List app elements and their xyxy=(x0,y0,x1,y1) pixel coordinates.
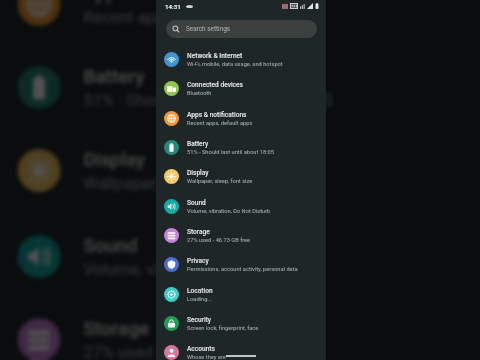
staticText: 51% - Should last until about 18:05 xyxy=(83,92,333,112)
button[interactable]: Location xyxy=(156,280,326,309)
button[interactable]: Storage xyxy=(0,298,480,360)
staticText: Whose they are xyxy=(187,354,226,360)
staticText: Wi-Fi, mobile, data usage, and hotspot xyxy=(187,61,283,68)
staticText: 51% - Should last until about 18:05 xyxy=(187,149,274,156)
button[interactable]: Battery xyxy=(0,46,480,129)
button[interactable]: Network & Internet xyxy=(156,45,326,74)
staticText: Storage xyxy=(187,228,210,236)
staticText: Wallpaper, sleep, font size xyxy=(187,178,253,185)
staticText: Connected devices xyxy=(187,81,243,89)
staticText: Network & Internet xyxy=(187,52,243,60)
staticText: Privacy xyxy=(187,257,209,265)
button[interactable]: Apps & notifications xyxy=(0,0,480,46)
button[interactable]: Storage xyxy=(156,221,326,250)
staticText: Storage xyxy=(83,318,149,341)
staticText: Display xyxy=(83,149,147,172)
button[interactable]: Battery xyxy=(156,133,326,162)
button[interactable]: Display xyxy=(156,162,326,191)
staticText: Loading... xyxy=(187,296,212,303)
staticText: Search settings xyxy=(186,25,231,33)
staticText: Battery xyxy=(83,66,147,89)
button[interactable]: Privacy xyxy=(156,250,326,279)
staticText: Wallpaper, sleep, font size xyxy=(83,175,273,195)
button[interactable]: Search settings xyxy=(166,20,317,38)
button[interactable]: Security xyxy=(156,309,326,338)
staticText: Display xyxy=(187,169,209,177)
button[interactable]: Display xyxy=(0,129,480,212)
staticText: Recent apps, default apps xyxy=(83,9,273,29)
staticText: Apps & notifications xyxy=(83,0,255,6)
staticText: Security xyxy=(187,316,212,324)
staticText: Sound xyxy=(83,235,138,258)
staticText: Bluetooth xyxy=(187,90,212,97)
button[interactable]: Sound xyxy=(156,192,326,221)
staticText: Sound xyxy=(187,199,206,207)
button[interactable]: Connected devices xyxy=(156,74,326,103)
staticText: Screen lock, fingerprint, face xyxy=(187,325,259,332)
staticText: Battery xyxy=(187,140,209,148)
button[interactable]: Apps & notifications xyxy=(156,104,326,133)
staticText: 27% used - 46.73 GB free xyxy=(187,237,251,244)
staticText: 27% used - 46.73 GB free xyxy=(83,344,267,360)
staticText: Volume, vibration, Do Not Disturb xyxy=(187,208,271,215)
staticText: Volume, vibration, Do Not Disturb xyxy=(83,261,324,281)
staticText: Accounts xyxy=(187,345,215,353)
staticText: Recent apps, default apps xyxy=(187,120,253,127)
button[interactable]: Sound xyxy=(0,215,480,298)
staticText: 14:31 xyxy=(165,3,181,10)
staticText: Permissions, account activity, personal … xyxy=(187,266,298,273)
button[interactable]: Accounts xyxy=(156,338,326,360)
staticText: Location xyxy=(187,287,213,295)
staticText: Apps & notifications xyxy=(187,111,247,119)
